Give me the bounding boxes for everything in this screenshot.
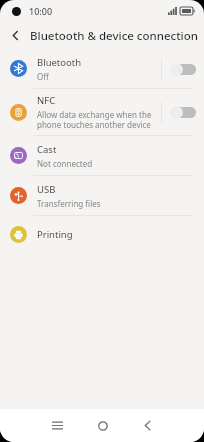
button[interactable]: Recent apps: [35, 409, 80, 442]
staticText: Cast: [37, 143, 57, 156]
staticText: Allow data exchange when the phone touch…: [37, 109, 152, 130]
staticText: Transferring files: [37, 198, 101, 209]
staticText: Bluetooth: [37, 56, 82, 69]
staticText: NFC: [37, 94, 56, 107]
button[interactable]: Back: [0, 22, 30, 49]
staticText: 10:00: [29, 5, 53, 17]
button[interactable]: Cast: [0, 136, 204, 175]
staticText: Off: [37, 71, 49, 82]
button[interactable]: Printing: [0, 216, 204, 253]
button[interactable]: NFC: [0, 89, 204, 135]
staticText: Not connected: [37, 158, 93, 169]
staticText: Printing: [37, 228, 73, 241]
button[interactable]: USB: [0, 176, 204, 215]
staticText: USB: [37, 183, 56, 196]
button[interactable]: NFC toggle: [169, 104, 196, 120]
button[interactable]: Back: [125, 409, 170, 442]
button[interactable]: Home: [80, 409, 125, 442]
button[interactable]: Bluetooth toggle: [169, 61, 196, 77]
staticText: Bluetooth & device connection: [30, 28, 198, 44]
button[interactable]: Bluetooth: [0, 49, 204, 88]
